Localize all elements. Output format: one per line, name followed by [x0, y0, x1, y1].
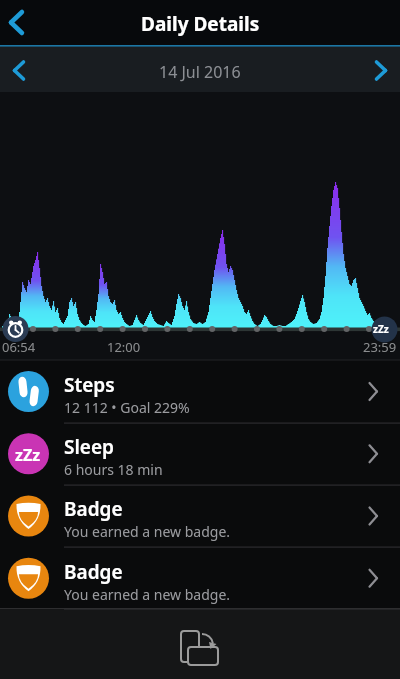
staticText: Badge: [64, 496, 123, 522]
staticText: Daily Details: [141, 11, 260, 37]
staticText: You earned a new badge.: [64, 585, 231, 604]
staticText: Sleep: [64, 434, 114, 460]
staticText: Badge: [64, 559, 123, 585]
staticText: zZz: [373, 322, 389, 336]
staticText: zZz: [15, 444, 41, 466]
staticText: 6 hours 18 min: [64, 460, 163, 479]
staticText: 14 Jul 2016: [159, 61, 241, 83]
staticText: You earned a new badge.: [64, 522, 231, 541]
staticText: Steps: [64, 372, 115, 398]
staticText: 12 112 • Goal 229%: [64, 398, 190, 417]
staticText: 23:59: [363, 338, 397, 356]
staticText: 06:54: [2, 338, 36, 356]
staticText: 12:00: [107, 338, 141, 356]
